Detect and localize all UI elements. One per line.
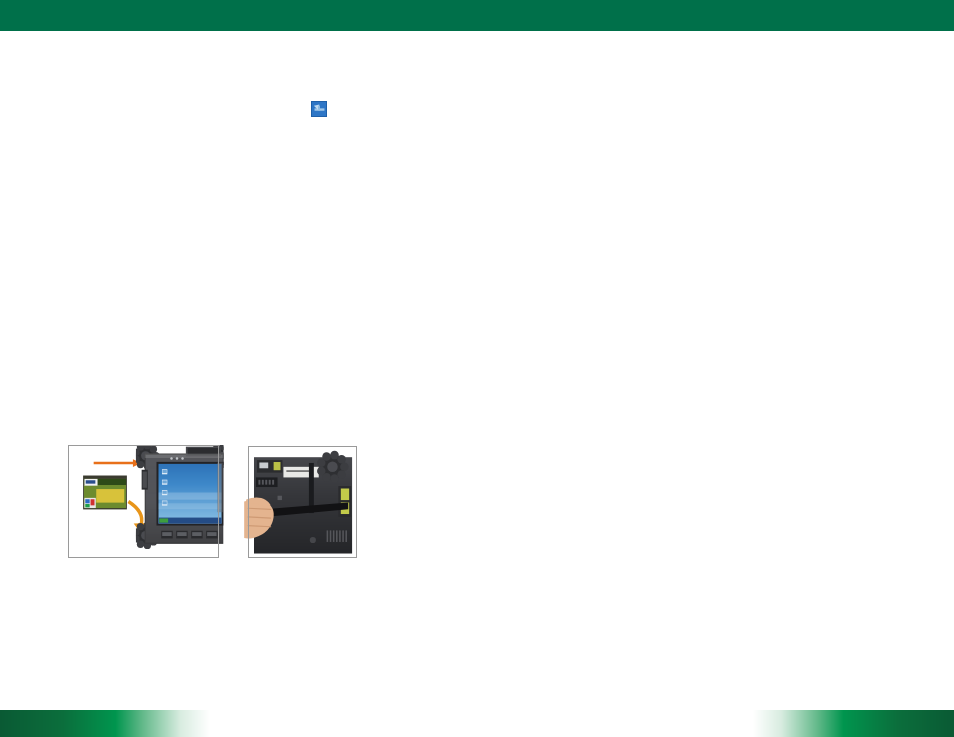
button[interactable]: Inserting card into tablet (68, 445, 219, 558)
button[interactable]: Insert shortcut (311, 101, 327, 117)
button[interactable]: Hand holding tablet strap (248, 446, 357, 558)
